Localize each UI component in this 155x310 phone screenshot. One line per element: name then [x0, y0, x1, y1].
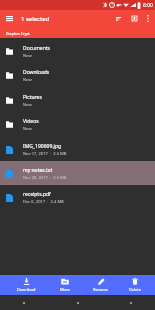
staticText: Now: [23, 126, 32, 132]
staticText: Dropbox Crypt: [6, 31, 30, 36]
staticText: 6:00: [143, 2, 153, 9]
staticText: Delete: [129, 287, 141, 292]
staticText: Downloads: [23, 69, 50, 76]
staticText: Now: [23, 77, 32, 83]
staticText: Documents: [23, 45, 50, 52]
staticText: my notes.txt: [23, 167, 53, 174]
staticText: Move: [60, 287, 70, 292]
button[interactable]: More options: [142, 11, 154, 26]
staticText: Pictures: [23, 94, 42, 101]
button[interactable]: Move: [46, 275, 84, 295]
staticText: Now: [23, 53, 32, 59]
button[interactable]: IMG_190609.jpg: [0, 137, 155, 161]
button[interactable]: my notes.txt: [0, 161, 155, 185]
staticText: Rename: [93, 287, 109, 292]
button[interactable]: Delete: [118, 275, 152, 295]
button[interactable]: Pictures: [0, 88, 155, 112]
staticText: Videos: [23, 118, 39, 125]
staticText: receipts.pdf: [23, 191, 51, 198]
staticText: 1 selected: [21, 15, 50, 23]
staticText: Dec 6, 2017 · 2.4 MB: [23, 199, 64, 205]
staticText: Nov 28, 2017 · 3.6 MB: [23, 175, 67, 181]
button[interactable]: Videos: [0, 112, 155, 136]
button[interactable]: receipts.pdf: [0, 185, 155, 209]
button[interactable]: Downloads: [0, 63, 155, 87]
staticText: Download: [17, 287, 36, 292]
button[interactable]: Documents: [0, 39, 155, 63]
staticText: Now: [23, 102, 32, 108]
staticText: IMG_190609.jpg: [23, 143, 62, 150]
button[interactable]: Select all: [127, 12, 141, 25]
button[interactable]: Download: [7, 275, 46, 295]
button[interactable]: Rename: [84, 275, 118, 295]
button[interactable]: Close selection: [1, 12, 18, 25]
staticText: Nov 17, 2017 · 2.6 MB: [23, 151, 67, 157]
button[interactable]: Sort: [111, 12, 125, 25]
